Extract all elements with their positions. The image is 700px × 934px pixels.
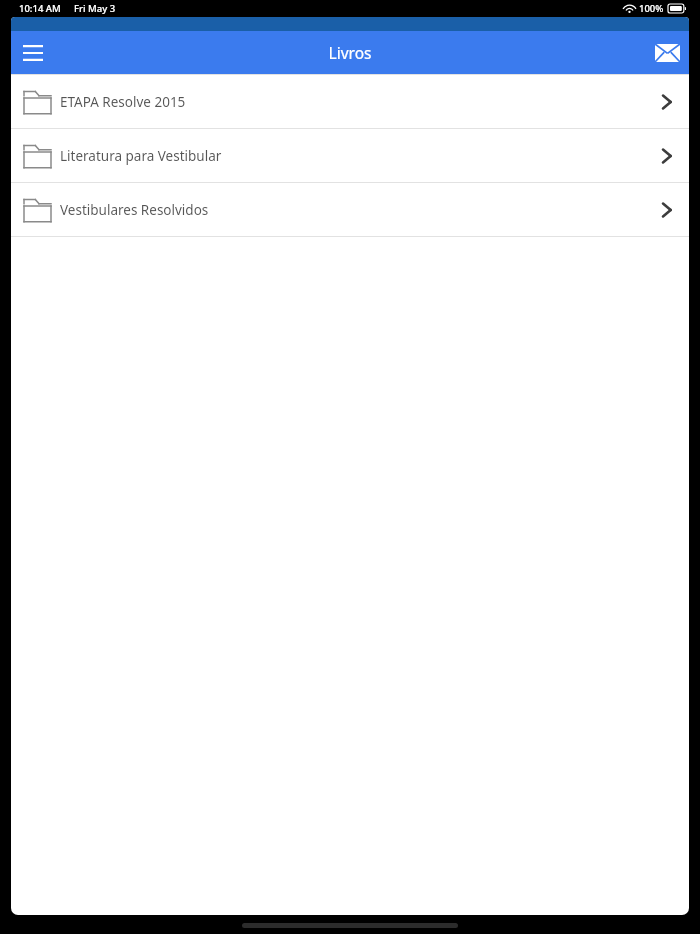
button[interactable]: Open navigation menu: [11, 31, 55, 74]
button[interactable]: Messages: [645, 31, 689, 74]
staticText: Literatura para Vestibular: [60, 147, 659, 165]
staticText: Livros: [11, 42, 689, 63]
button[interactable]: ETAPA Resolve 2015: [11, 75, 689, 128]
staticText: ETAPA Resolve 2015: [60, 93, 659, 111]
staticText: 10:14 AM: [19, 2, 61, 15]
staticText: Vestibulares Resolvidos: [60, 201, 659, 219]
staticText: 100%: [639, 2, 664, 15]
button[interactable]: Vestibulares Resolvidos: [11, 183, 689, 236]
button[interactable]: Literatura para Vestibular: [11, 129, 689, 182]
staticText: Fri May 3: [74, 2, 116, 15]
